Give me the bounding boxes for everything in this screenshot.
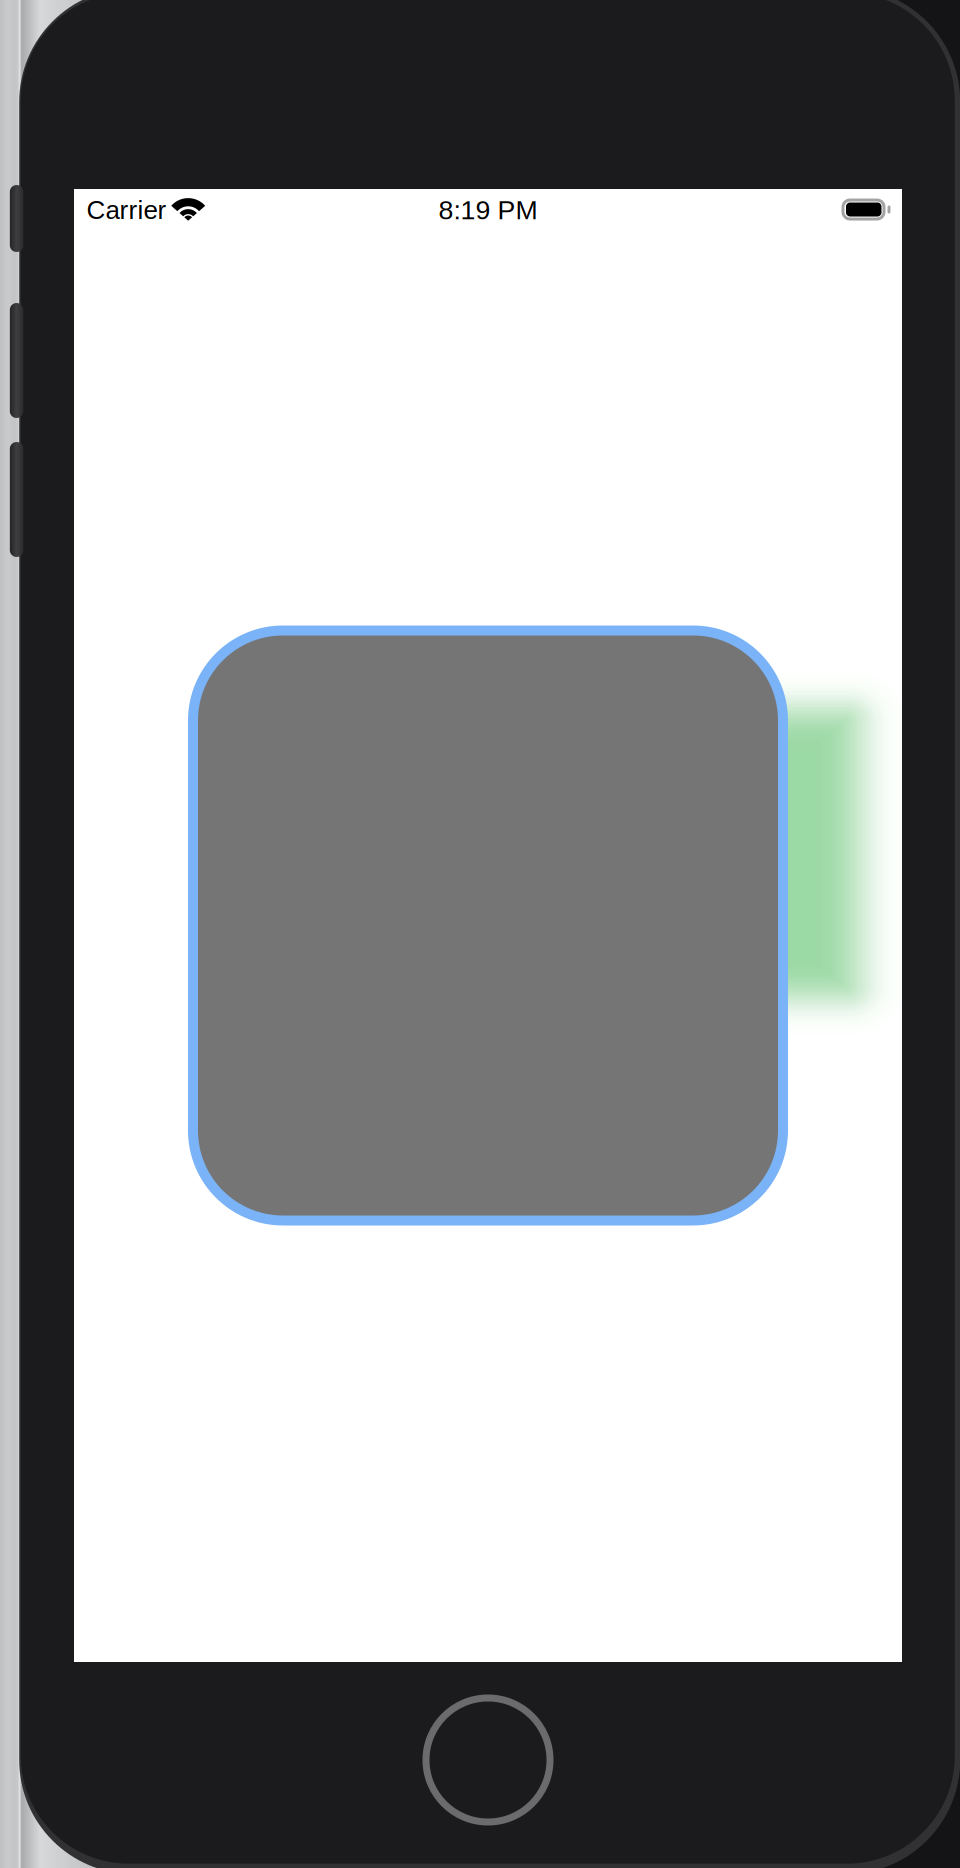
staticText: 8:19 PM	[438, 195, 537, 225]
button[interactable]: Card	[188, 625, 788, 1225]
staticText: Carrier	[86, 195, 166, 224]
